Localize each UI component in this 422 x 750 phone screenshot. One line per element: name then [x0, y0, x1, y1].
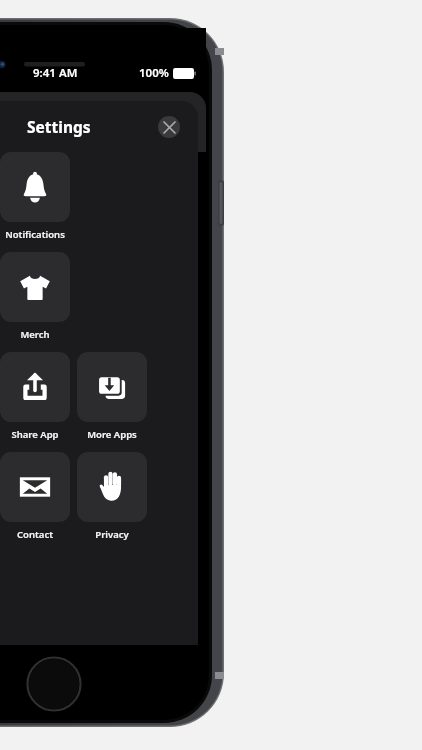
button[interactable]: Notifications: [0, 152, 70, 241]
staticText: Privacy: [77, 528, 147, 541]
staticText: Settings: [27, 116, 91, 137]
button[interactable]: More Apps: [77, 352, 147, 441]
staticText: More Apps: [77, 428, 147, 441]
button[interactable]: Share App: [0, 352, 70, 441]
staticText: 100%: [139, 65, 169, 81]
button[interactable]: Privacy: [77, 452, 147, 541]
staticText: Merch: [0, 328, 70, 341]
staticText: Contact: [0, 528, 70, 541]
button[interactable]: Close: [158, 116, 180, 138]
staticText: 9:41 AM: [33, 65, 78, 81]
staticText: Share App: [0, 428, 70, 441]
staticText: Notifications: [0, 228, 70, 241]
button[interactable]: Contact: [0, 452, 70, 541]
button[interactable]: Merch: [0, 252, 70, 341]
